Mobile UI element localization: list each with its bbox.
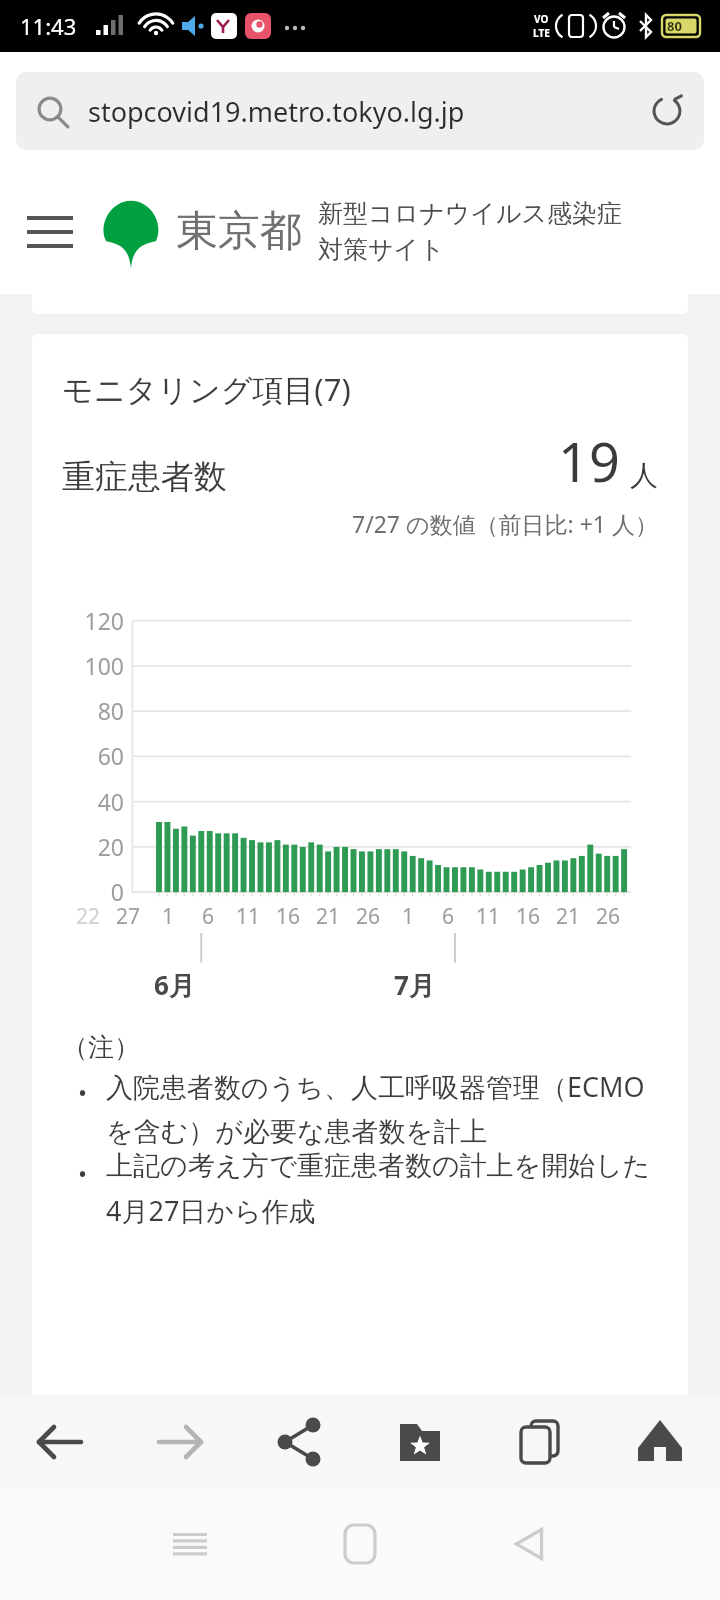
staticText: （注） [62, 1031, 140, 1064]
staticText: LTE [533, 26, 550, 40]
button[interactable]: モニタリング項目(7) [32, 334, 688, 1395]
button[interactable]: Back [0, 1395, 120, 1488]
staticText: 入院患者数のうち、人工呼吸器管理（ECMOを含む）が必要な患者数を計上 [106, 1068, 658, 1149]
staticText: 21 [308, 902, 348, 931]
staticText: 6 [428, 902, 468, 931]
staticText: 26 [588, 902, 628, 931]
staticText: 7月 [394, 967, 435, 1003]
staticText: 1 [148, 902, 188, 931]
staticText: 11 [468, 902, 508, 931]
button[interactable]: Home [600, 1395, 720, 1488]
staticText: 26 [348, 902, 388, 931]
staticText: VO [534, 12, 549, 26]
button[interactable]: Tabs [480, 1395, 600, 1488]
button[interactable]: Back [445, 1488, 615, 1600]
staticText: 11:43 [20, 11, 77, 41]
staticText: 人 [630, 458, 658, 493]
staticText: 上記の考え方で重症患者数の計上を開始した4月27日から作成 [106, 1149, 658, 1229]
staticText: 重症患者数 [62, 456, 227, 498]
staticText: 100 [62, 650, 124, 681]
button[interactable]: Menu [0, 169, 100, 294]
staticText: 7/27 の数値（前日比: +1 人） [352, 508, 658, 539]
staticText: 16 [268, 902, 308, 931]
staticText: 6 [188, 902, 228, 931]
staticText: 40 [62, 786, 124, 817]
button[interactable]: Home [275, 1488, 445, 1600]
button[interactable]: Bookmarks [360, 1395, 480, 1488]
staticText: • [78, 1157, 88, 1190]
button[interactable]: Search [16, 72, 704, 150]
button[interactable]: Recents [105, 1488, 275, 1600]
staticText: 19 [558, 424, 620, 498]
staticText: 11 [228, 902, 268, 931]
staticText: 27 [108, 902, 148, 931]
staticText: 60 [62, 740, 124, 771]
staticText: • [78, 1076, 88, 1109]
staticText: モニタリング項目(7) [62, 368, 351, 410]
staticText: 80 [62, 695, 124, 726]
staticText: 6月 [154, 967, 195, 1003]
staticText: 22 [68, 902, 108, 931]
staticText: 16 [508, 902, 548, 931]
button[interactable]: Forward [120, 1395, 240, 1488]
staticText: 0 [62, 876, 124, 907]
staticText: 120 [62, 605, 124, 636]
staticText: 80 [667, 17, 682, 35]
staticText: 新型コロナウイルス感染症 対策サイト [318, 198, 623, 265]
other: Search [16, 72, 88, 150]
button[interactable]: Share [240, 1395, 360, 1488]
staticText: 20 [62, 831, 124, 862]
staticText: 東京都 [176, 205, 302, 258]
staticText: stopcovid19.metro.tokyo.lg.jp [88, 93, 630, 130]
staticText: 1 [388, 902, 428, 931]
staticText: 21 [548, 902, 588, 931]
other: Reload [630, 72, 704, 150]
